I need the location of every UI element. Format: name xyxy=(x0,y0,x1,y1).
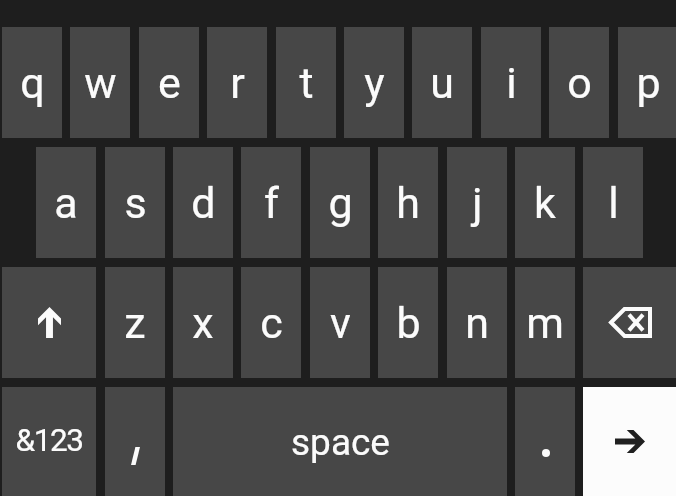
button[interactable]: c xyxy=(241,267,301,378)
staticText: s xyxy=(124,178,147,228)
button[interactable]: b xyxy=(378,267,438,378)
button[interactable]: x xyxy=(173,267,233,378)
staticText: p xyxy=(636,58,661,108)
button[interactable]: r xyxy=(207,27,267,138)
staticText: e xyxy=(158,58,181,108)
staticText: n xyxy=(465,298,489,348)
button[interactable]: d xyxy=(173,147,233,258)
staticText: u xyxy=(430,58,454,108)
staticText: z xyxy=(124,298,146,348)
button[interactable]: u xyxy=(412,27,472,138)
staticText: l xyxy=(608,178,619,228)
button[interactable]: q xyxy=(2,27,62,138)
staticText: x xyxy=(192,298,214,348)
staticText: t xyxy=(299,58,314,108)
staticText: &123 xyxy=(15,422,83,459)
button[interactable]: k xyxy=(515,147,575,258)
staticText: space xyxy=(291,421,390,464)
button[interactable]: Period xyxy=(515,387,575,496)
button[interactable]: &123 xyxy=(2,387,96,496)
button[interactable]: f xyxy=(241,147,301,258)
button[interactable]: o xyxy=(549,27,609,138)
button[interactable]: Enter xyxy=(583,387,676,496)
button[interactable]: g xyxy=(310,147,370,258)
button[interactable]: t xyxy=(276,27,336,138)
button[interactable]: i xyxy=(481,27,541,138)
staticText: c xyxy=(260,298,283,348)
button[interactable]: y xyxy=(344,27,404,138)
staticText: i xyxy=(506,58,517,108)
button[interactable]: s xyxy=(105,147,165,258)
staticText: k xyxy=(534,178,556,228)
button[interactable]: Comma xyxy=(105,387,165,496)
button[interactable]: j xyxy=(447,147,507,258)
staticText: j xyxy=(472,178,483,228)
button[interactable]: p xyxy=(618,27,676,138)
button[interactable]: m xyxy=(515,267,575,378)
staticText: m xyxy=(526,298,564,348)
button[interactable]: Backspace xyxy=(583,267,676,378)
staticText: o xyxy=(567,58,592,108)
staticText: d xyxy=(191,178,216,228)
staticText: v xyxy=(330,298,351,348)
staticText: g xyxy=(328,178,353,228)
button[interactable]: z xyxy=(105,267,165,378)
staticText: y xyxy=(364,58,385,108)
button[interactable]: w xyxy=(70,27,130,138)
button[interactable]: a xyxy=(36,147,96,258)
staticText: w xyxy=(84,58,117,108)
button[interactable]: h xyxy=(378,147,438,258)
button[interactable]: e xyxy=(139,27,199,138)
button[interactable]: l xyxy=(583,147,643,258)
button[interactable]: space xyxy=(173,387,507,496)
staticText: q xyxy=(20,58,45,108)
staticText: a xyxy=(54,178,78,228)
button[interactable]: n xyxy=(447,267,507,378)
staticText: f xyxy=(264,178,279,228)
button[interactable]: Shift xyxy=(2,267,96,378)
staticText: b xyxy=(396,298,421,348)
button[interactable]: v xyxy=(310,267,370,378)
staticText: h xyxy=(396,178,420,228)
staticText: r xyxy=(230,58,245,108)
